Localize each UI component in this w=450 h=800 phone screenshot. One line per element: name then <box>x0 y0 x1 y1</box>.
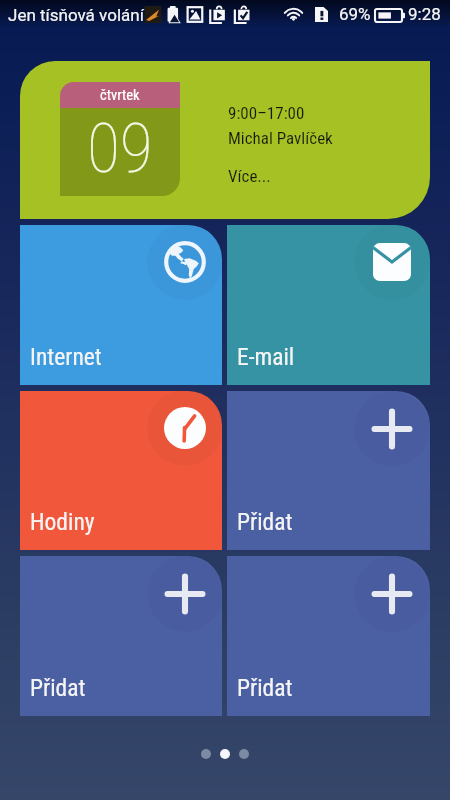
staticText: Přidat <box>30 674 86 702</box>
staticText: Jen tísňová volání <box>8 5 144 25</box>
staticText: 9:28 <box>408 4 441 24</box>
staticText: čtvrtek <box>100 87 140 104</box>
staticText: Více... <box>228 166 271 186</box>
button[interactable]: Internet <box>20 225 222 385</box>
button[interactable]: Hodiny <box>20 391 222 550</box>
staticText: Internet <box>30 343 102 371</box>
button[interactable]: E-mail <box>227 225 430 385</box>
staticText: E-mail <box>237 343 295 371</box>
button[interactable]: Přidat <box>227 391 430 550</box>
other: Hodiny <box>164 407 206 449</box>
staticText: Hodiny <box>30 508 95 536</box>
staticText: 69% <box>339 4 371 24</box>
other: E-mail <box>373 243 411 281</box>
staticText: Přidat <box>237 508 293 536</box>
other: Přidat <box>368 405 416 453</box>
staticText: 09 <box>87 109 153 189</box>
other: Internet <box>163 240 207 284</box>
staticText: Michal Pavlíček <box>228 128 333 148</box>
button[interactable]: čtvrtek <box>20 61 430 219</box>
staticText: 9:00–17:00 <box>228 103 305 123</box>
staticText: Přidat <box>237 674 293 702</box>
other: Přidat <box>161 570 209 618</box>
button[interactable]: Přidat <box>20 556 222 716</box>
button[interactable]: Přidat <box>227 556 430 716</box>
other: Přidat <box>368 570 416 618</box>
